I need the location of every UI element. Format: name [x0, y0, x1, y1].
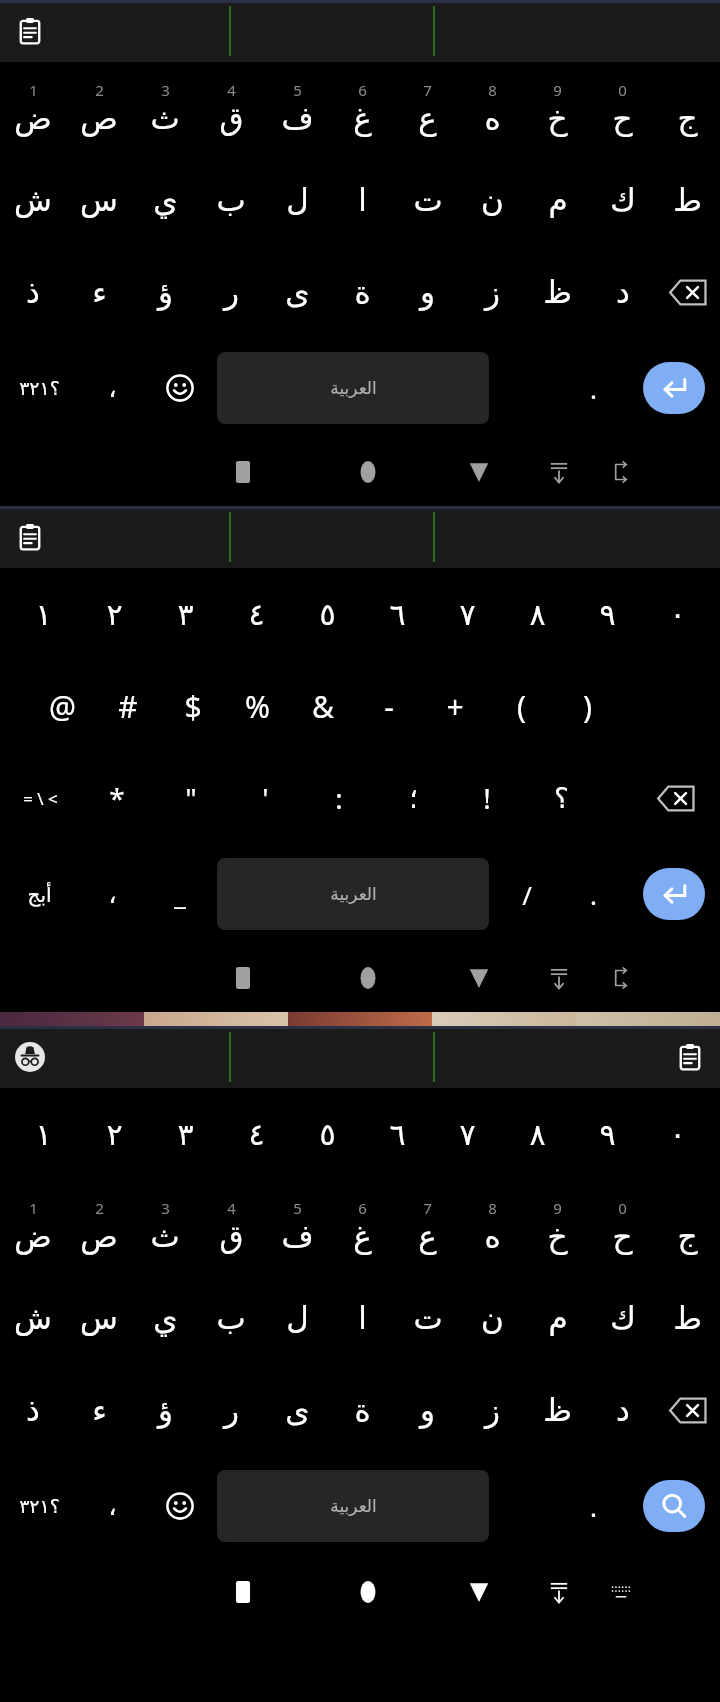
button[interactable]: _ — [146, 844, 213, 944]
button[interactable]: العربية — [217, 352, 489, 424]
button[interactable]: ، — [79, 844, 146, 944]
button[interactable]: ط — [655, 154, 720, 246]
button[interactable]: Emoji — [146, 338, 213, 438]
button[interactable]: 8 — [460, 1180, 525, 1272]
button[interactable]: 5 — [264, 62, 330, 154]
button[interactable]: # — [95, 660, 160, 752]
button[interactable]: س — [66, 154, 132, 246]
button[interactable]: ر — [198, 1364, 264, 1456]
button[interactable]: ؤ — [132, 1364, 198, 1456]
button[interactable]: Backspace — [631, 752, 720, 844]
button[interactable]: . — [560, 338, 627, 438]
button[interactable]: ) — [554, 660, 620, 752]
button[interactable]: و — [395, 246, 460, 338]
button[interactable]: Back — [430, 438, 528, 506]
button[interactable]: ن — [460, 1272, 525, 1364]
button[interactable]: ؟ — [524, 752, 598, 844]
button[interactable]: ر — [198, 246, 264, 338]
button[interactable]: 6 — [330, 1180, 395, 1272]
button[interactable]: ى — [264, 1364, 330, 1456]
button[interactable]: س — [66, 1272, 132, 1364]
button[interactable]: العربية — [217, 1470, 489, 1542]
button[interactable]: = \ < — [0, 752, 80, 844]
button[interactable]: ظ — [525, 246, 590, 338]
button[interactable]: ٠ — [642, 1088, 712, 1180]
button[interactable]: Recent apps — [180, 1556, 305, 1628]
button[interactable]: ٦ — [362, 1088, 432, 1180]
button[interactable]: العربية — [217, 858, 489, 930]
button[interactable]: : — [302, 752, 376, 844]
button[interactable]: 3 — [132, 1180, 198, 1272]
button[interactable]: ٠ — [642, 568, 712, 660]
button[interactable]: ج — [655, 1180, 720, 1272]
button[interactable]: Enter — [643, 868, 705, 920]
button[interactable]: ي — [132, 1272, 198, 1364]
button[interactable]: ا — [330, 154, 395, 246]
button[interactable]: ٣ — [150, 1088, 221, 1180]
button[interactable]: Emoji — [146, 1456, 213, 1556]
button[interactable]: 7 — [395, 1180, 460, 1272]
button[interactable]: ت — [395, 1272, 460, 1364]
button[interactable]: ء — [66, 1364, 132, 1456]
button[interactable]: Clipboard — [8, 9, 52, 53]
button[interactable]: 0 — [590, 62, 655, 154]
button[interactable]: % — [225, 660, 290, 752]
button[interactable]: ظ — [525, 1364, 590, 1456]
button[interactable]: + — [422, 660, 488, 752]
button[interactable]: ٩ — [572, 1088, 642, 1180]
button[interactable]: - — [356, 660, 422, 752]
button[interactable]: Recent apps — [180, 944, 305, 1012]
button[interactable]: ي — [132, 154, 198, 246]
button[interactable]: Clipboard — [668, 1035, 712, 1079]
button[interactable]: / — [493, 844, 560, 944]
button[interactable]: 8 — [460, 62, 525, 154]
button[interactable]: ب — [198, 154, 264, 246]
button[interactable]: 1 — [0, 62, 66, 154]
button[interactable]: ١ — [8, 1088, 79, 1180]
button[interactable]: Rotate screen — [590, 944, 652, 1012]
button[interactable]: ة — [330, 246, 395, 338]
button[interactable]: ؟٣٢١ — [0, 338, 79, 438]
button[interactable]: Clipboard — [8, 515, 52, 559]
button[interactable]: ذ — [0, 246, 66, 338]
button[interactable]: ( — [488, 660, 554, 752]
button[interactable]: ، — [79, 1456, 146, 1556]
button[interactable]: ؤ — [132, 246, 198, 338]
button[interactable]: ش — [0, 154, 66, 246]
button[interactable]: ء — [66, 246, 132, 338]
button[interactable]: ٢ — [79, 568, 150, 660]
button[interactable]: 3 — [132, 62, 198, 154]
button[interactable]: ن — [460, 154, 525, 246]
button[interactable]: Home — [305, 1556, 430, 1628]
button[interactable]: Hide keyboard — [528, 438, 590, 506]
button[interactable]: ٥ — [292, 1088, 362, 1180]
button[interactable]: ط — [655, 1272, 720, 1364]
button[interactable]: م — [525, 1272, 590, 1364]
button[interactable]: & — [290, 660, 356, 752]
button[interactable]: Switch keyboard — [590, 1556, 652, 1628]
button[interactable]: . — [560, 1456, 627, 1556]
button[interactable]: Hide keyboard — [528, 1556, 590, 1628]
button[interactable]: Home — [305, 438, 430, 506]
button[interactable]: 9 — [525, 62, 590, 154]
button[interactable]: Search — [643, 1480, 705, 1532]
button[interactable]: . — [560, 844, 627, 944]
button[interactable]: ٨ — [502, 1088, 572, 1180]
button[interactable]: 2 — [66, 1180, 132, 1272]
button[interactable]: ى — [264, 246, 330, 338]
button[interactable]: ذ — [0, 1364, 66, 1456]
button[interactable]: 4 — [198, 1180, 264, 1272]
button[interactable]: $ — [160, 660, 225, 752]
button[interactable]: ة — [330, 1364, 395, 1456]
button[interactable]: ٢ — [79, 1088, 150, 1180]
button[interactable]: 1 — [0, 1180, 66, 1272]
button[interactable]: Backspace — [655, 1364, 720, 1456]
button[interactable]: ب — [198, 1272, 264, 1364]
button[interactable]: ٤ — [221, 568, 292, 660]
button[interactable]: " — [154, 752, 228, 844]
button[interactable]: م — [525, 154, 590, 246]
button[interactable]: ٣ — [150, 568, 221, 660]
button[interactable]: د — [590, 1364, 655, 1456]
button[interactable]: ز — [460, 1364, 525, 1456]
